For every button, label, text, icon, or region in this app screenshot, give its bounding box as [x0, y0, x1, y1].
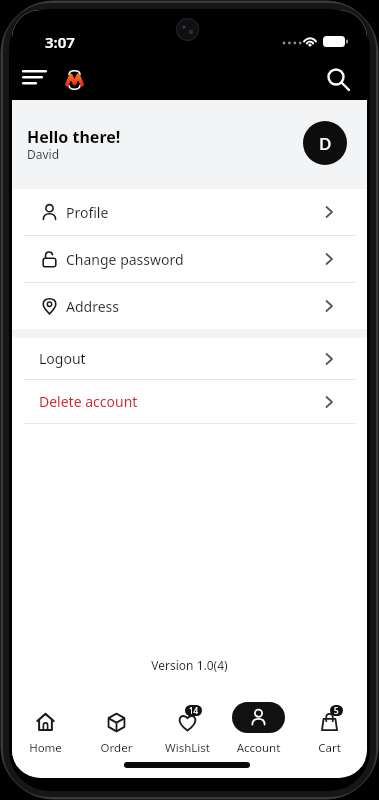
staticText: 14 — [189, 705, 199, 716]
button[interactable]: Delete account — [12, 380, 367, 423]
button[interactable]: Order — [81, 687, 152, 767]
staticText: Address — [66, 297, 119, 316]
button[interactable]: 14 — [152, 687, 223, 767]
button[interactable]: Address — [12, 283, 367, 329]
button[interactable] — [62, 64, 92, 100]
button[interactable]: Profile — [12, 189, 367, 235]
staticText: Account — [223, 740, 294, 756]
staticText: Version 1.0(4) — [12, 657, 367, 673]
staticText: 5 — [334, 705, 339, 716]
button[interactable] — [14, 63, 56, 99]
button[interactable]: 5 — [294, 687, 365, 767]
button[interactable]: Logout — [12, 338, 367, 379]
staticText: Change password — [66, 250, 184, 269]
button[interactable] — [318, 63, 362, 100]
staticText: Logout — [39, 349, 86, 368]
button[interactable]: Change password — [12, 236, 367, 282]
staticText: Hello there! — [27, 126, 121, 148]
staticText: Cart — [294, 740, 365, 756]
button[interactable]: Account — [223, 687, 294, 767]
staticText: WishList — [152, 740, 223, 756]
staticText: 3:07 — [45, 32, 75, 52]
staticText: Home — [12, 740, 81, 756]
staticText: Delete account — [39, 392, 138, 411]
button[interactable]: Home — [12, 687, 81, 767]
staticText: Order — [81, 740, 152, 756]
button[interactable]: D — [303, 121, 347, 165]
staticText: David — [27, 146, 60, 162]
staticText: D — [319, 132, 332, 155]
staticText: Profile — [66, 203, 109, 222]
